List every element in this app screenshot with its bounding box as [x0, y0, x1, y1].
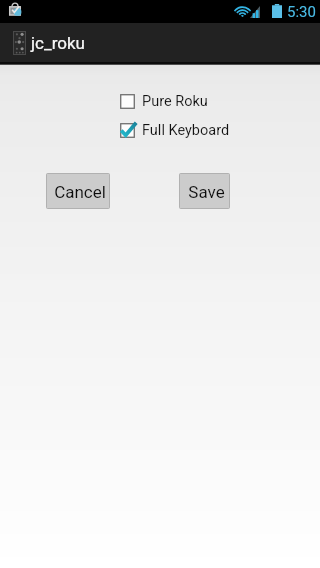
staticText: Full Keyboard [142, 122, 230, 139]
staticText: Cancel [54, 182, 106, 202]
other: Download complete [8, 2, 22, 17]
staticText: 5:30 [287, 3, 316, 21]
button[interactable]: Cancel [46, 173, 110, 209]
other: App icon [13, 31, 26, 55]
other: Battery [272, 4, 282, 18]
button[interactable]: Save [179, 173, 230, 209]
staticText: Save [188, 182, 225, 202]
button[interactable]: Pure Roku [119, 93, 208, 110]
staticText: Pure Roku [142, 93, 208, 110]
other: Signal strength [250, 6, 260, 18]
button[interactable]: Full Keyboard [119, 122, 230, 139]
other: Wi-Fi [233, 2, 252, 18]
staticText: jc_roku [31, 33, 85, 53]
